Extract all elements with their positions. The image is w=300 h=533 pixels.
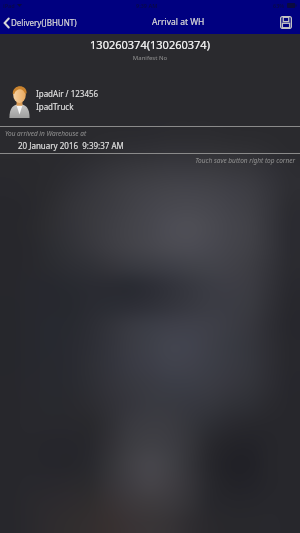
staticText: Delivery(JBHUNT) [11, 17, 77, 28]
staticText: IpadAir / 123456 [36, 88, 99, 99]
staticText: Manifest No [0, 54, 300, 62]
staticText: 20 January 2016 9:39:37 AM [18, 140, 124, 151]
staticText: 130260374(130260374) [0, 37, 300, 52]
staticText: Touch save button right top corner [0, 156, 295, 165]
staticText: 9:39 AM [136, 2, 158, 9]
button[interactable]: Delivery(JBHUNT) [0, 17, 83, 28]
button[interactable]: Save [274, 10, 298, 34]
staticText: You arrived in Warehouse at [5, 129, 87, 138]
staticText: iPad [3, 2, 15, 9]
staticText: 63% [273, 2, 285, 9]
button[interactable]: IpadAir / 123456 [0, 81, 300, 119]
staticText: Arrival at WH [152, 16, 205, 28]
staticText: IpadTruck [36, 101, 74, 112]
